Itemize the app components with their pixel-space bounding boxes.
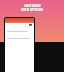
staticText: WITH OPTIONS bbox=[21, 8, 43, 12]
staticText: SAVE MORE bbox=[24, 4, 41, 8]
button[interactable]: Scan code bbox=[29, 24, 32, 26]
